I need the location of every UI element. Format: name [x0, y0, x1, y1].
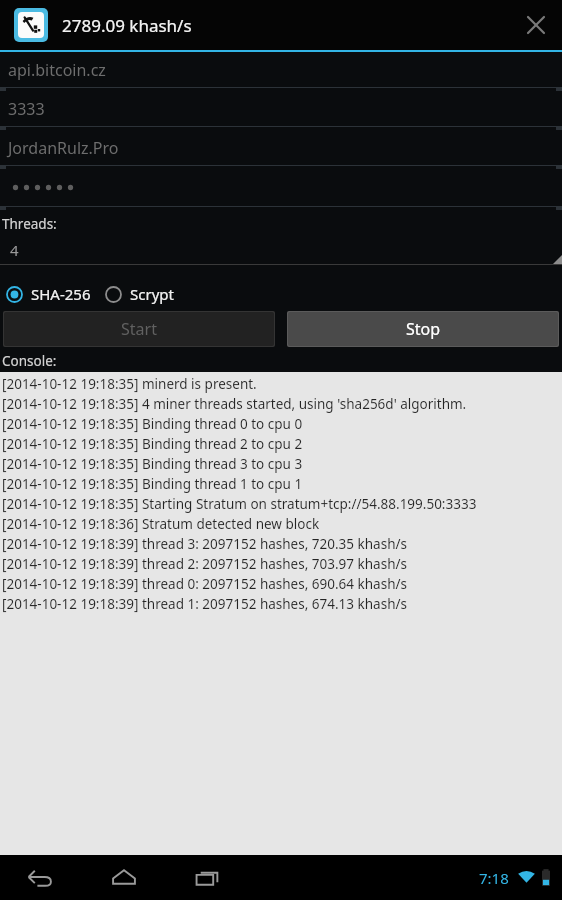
staticText: [2014-10-12 19:18:36] Stratum detected n… [2, 515, 320, 533]
staticText: 7:18 [479, 868, 509, 888]
button[interactable]: Scrypt [105, 284, 174, 304]
button[interactable]: api.bitcoin.cz [0, 52, 562, 87]
button[interactable]: Stop [288, 312, 558, 346]
staticText: SHA-256 [31, 284, 91, 304]
other: Battery [542, 868, 550, 887]
staticText: [2014-10-12 19:18:39] thread 0: 2097152 … [2, 575, 407, 593]
staticText: Threads: [2, 215, 57, 233]
button[interactable]: Back [18, 855, 62, 900]
staticText: [2014-10-12 19:18:39] thread 2: 2097152 … [2, 555, 407, 573]
staticText: [2014-10-12 19:18:35] minerd is present. [2, 375, 257, 393]
staticText: [2014-10-12 19:18:35] Binding thread 3 t… [2, 455, 303, 473]
other: Wifi [517, 868, 536, 887]
button[interactable]: Start [4, 312, 274, 346]
staticText: [2014-10-12 19:18:35] Binding thread 0 t… [2, 415, 303, 433]
button[interactable]: Close [510, 0, 562, 50]
button[interactable]: 4 [0, 236, 562, 273]
button[interactable]: Home [102, 855, 146, 900]
staticText: JordanRulz.Pro [8, 137, 119, 159]
staticText: [2014-10-12 19:18:35] Starting Stratum o… [2, 495, 477, 513]
staticText: [2014-10-12 19:18:35] Binding thread 2 t… [2, 435, 303, 453]
staticText: 3333 [8, 98, 45, 120]
button[interactable]: Password [0, 169, 562, 206]
staticText: Stop [406, 318, 441, 340]
staticText: [2014-10-12 19:18:39] thread 3: 2097152 … [2, 535, 407, 553]
staticText: api.bitcoin.cz [8, 59, 106, 81]
button[interactable]: 3333 [0, 91, 562, 126]
staticText: [2014-10-12 19:18:39] thread 1: 2097152 … [2, 595, 407, 613]
button[interactable]: JordanRulz.Pro [0, 130, 562, 165]
staticText: 2789.09 khash/s [62, 14, 192, 37]
button[interactable]: Recents [186, 855, 230, 900]
staticText: 4 [10, 240, 19, 260]
staticText: Console: [2, 352, 57, 370]
staticText: [2014-10-12 19:18:35] 4 miner threads st… [2, 395, 467, 413]
button[interactable]: [2014-10-12 19:18:35] minerd is present. [0, 372, 562, 855]
staticText: Scrypt [130, 284, 174, 304]
button[interactable]: SHA-256 [6, 284, 91, 304]
staticText: Start [121, 318, 157, 340]
staticText: [2014-10-12 19:18:35] Binding thread 1 t… [2, 475, 303, 493]
